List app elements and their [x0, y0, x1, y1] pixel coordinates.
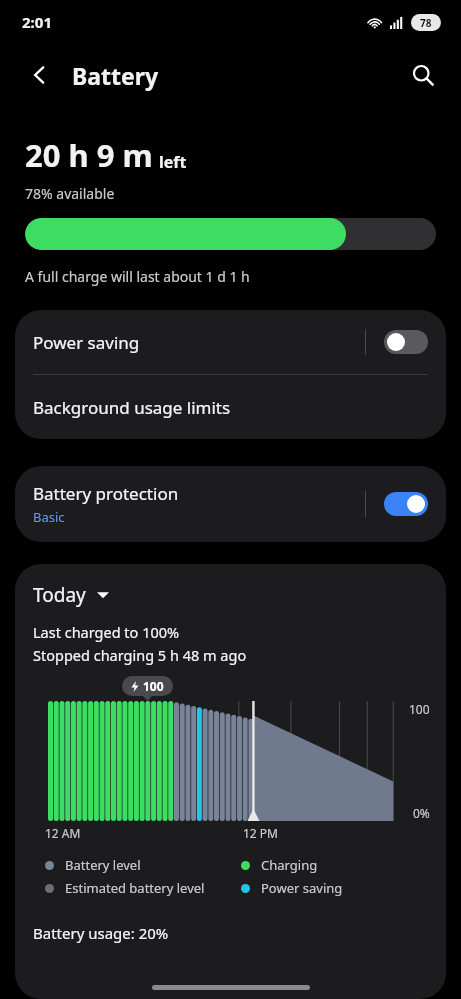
button[interactable]: Toggle off [384, 330, 428, 354]
staticText: left [159, 151, 187, 173]
staticText: Estimated battery level [65, 879, 205, 897]
staticText: Charging [261, 856, 318, 874]
staticText: 12 AM [45, 825, 81, 841]
button[interactable]: Battery protection [15, 466, 446, 542]
staticText: Power saving [261, 879, 343, 897]
staticText: Battery level [65, 856, 141, 874]
staticText: 78 [420, 16, 432, 30]
staticText: A full charge will last about 1 d 1 h [25, 267, 250, 286]
button[interactable]: Today [33, 582, 109, 608]
staticText: 0% [413, 805, 430, 821]
button[interactable]: Background usage limits [15, 375, 446, 439]
staticText: 2:01 [22, 12, 52, 32]
button[interactable]: Power saving [15, 310, 446, 374]
staticText: 100 [409, 701, 430, 717]
staticText: Battery usage: 20% [33, 923, 169, 943]
staticText: Background usage limits [33, 396, 231, 419]
staticText: 12 PM [243, 825, 278, 841]
staticText: Battery [72, 60, 159, 91]
staticText: Battery protection [33, 482, 179, 505]
button[interactable]: Search [403, 55, 443, 95]
staticText: Today [33, 582, 86, 608]
staticText: Power saving [33, 331, 140, 354]
staticText: 20 h 9 m [25, 134, 153, 176]
staticText: Last charged to 100% [33, 622, 180, 642]
button[interactable]: Back [22, 57, 58, 93]
staticText: Stopped charging 5 h 48 m ago [33, 645, 247, 665]
staticText: 100 [143, 678, 164, 694]
staticText: Basic [33, 508, 65, 526]
staticText: 78% available [25, 184, 115, 203]
button[interactable]: Toggle on [384, 492, 428, 516]
